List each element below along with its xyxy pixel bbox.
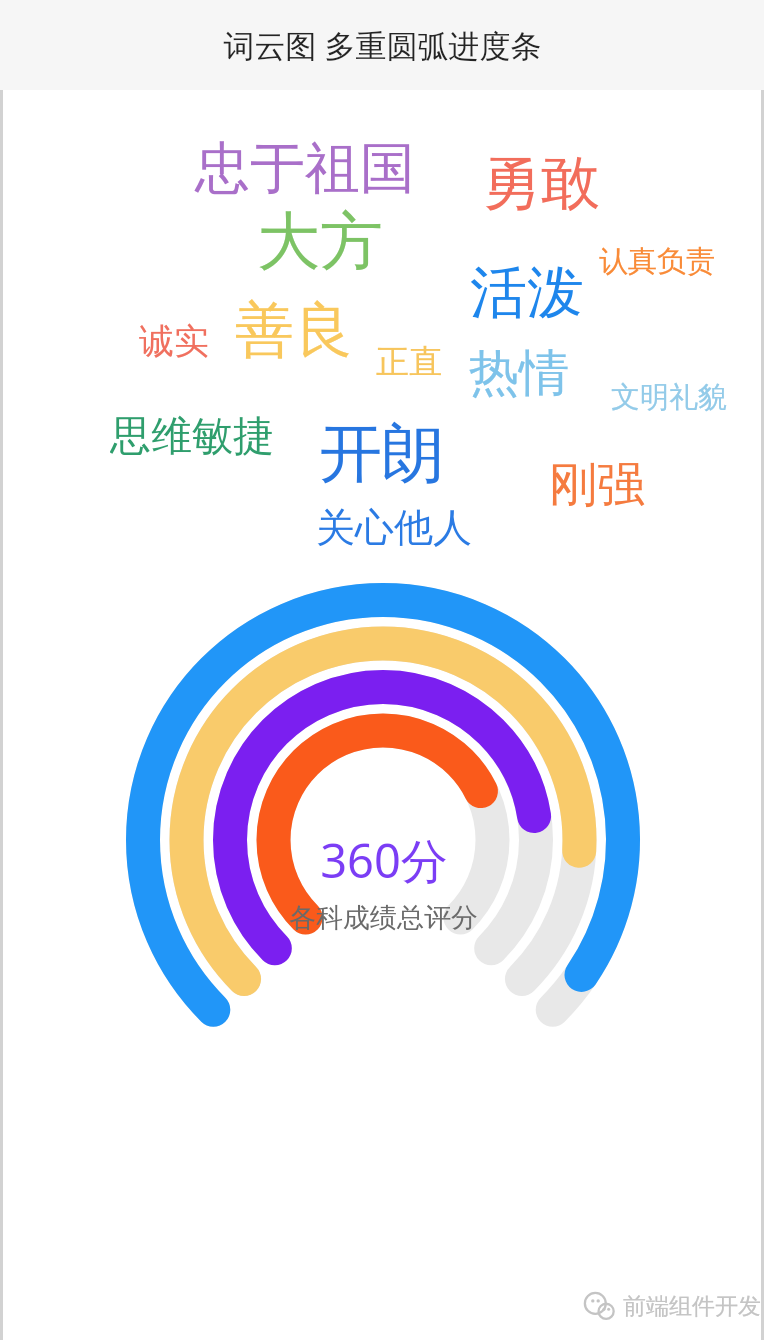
button[interactable]: 前端组件开发 公众号: [582, 1285, 752, 1327]
button[interactable]: 勇敢: [479, 146, 603, 220]
staticText: 善良: [235, 293, 353, 367]
button[interactable]: 善良: [232, 293, 356, 367]
staticText: 词云图 多重圆弧进度条: [223, 24, 542, 66]
button[interactable]: 正直: [373, 341, 445, 382]
button[interactable]: 文明礼貌: [608, 379, 730, 415]
staticText: 思维敏捷: [110, 411, 274, 462]
staticText: 诚实: [139, 319, 209, 363]
button[interactable]: 开朗: [316, 414, 448, 493]
button[interactable]: 诚实: [136, 319, 212, 363]
staticText: 刚强: [549, 455, 645, 515]
button[interactable]: 关心他人: [313, 503, 475, 552]
button[interactable]: 认真负责: [596, 243, 718, 279]
staticText: 勇敢: [482, 146, 600, 220]
button[interactable]: 活泼: [467, 257, 587, 328]
button[interactable]: 词云图 多重圆弧进度条: [0, 0, 764, 90]
staticText: 大方: [257, 202, 383, 281]
button[interactable]: 忠于祖国: [192, 134, 418, 203]
staticText: 活泼: [470, 257, 584, 328]
staticText: 认真负责: [599, 243, 715, 279]
staticText: 各科成绩总评分: [289, 901, 478, 935]
staticText: 热情: [469, 342, 569, 405]
button[interactable]: 热情: [466, 342, 572, 405]
button[interactable]: 思维敏捷: [107, 411, 277, 462]
staticText: 文明礼貌: [611, 379, 727, 415]
button[interactable]: 大方: [254, 202, 386, 281]
staticText: 关心他人: [316, 503, 472, 552]
staticText: 开朗: [319, 414, 445, 493]
button[interactable]: 刚强: [546, 455, 648, 515]
staticText: 前端组件开发: [623, 1292, 761, 1321]
staticText: 360分: [320, 828, 448, 892]
staticText: 忠于祖国: [195, 134, 415, 203]
staticText: 正直: [376, 341, 442, 382]
